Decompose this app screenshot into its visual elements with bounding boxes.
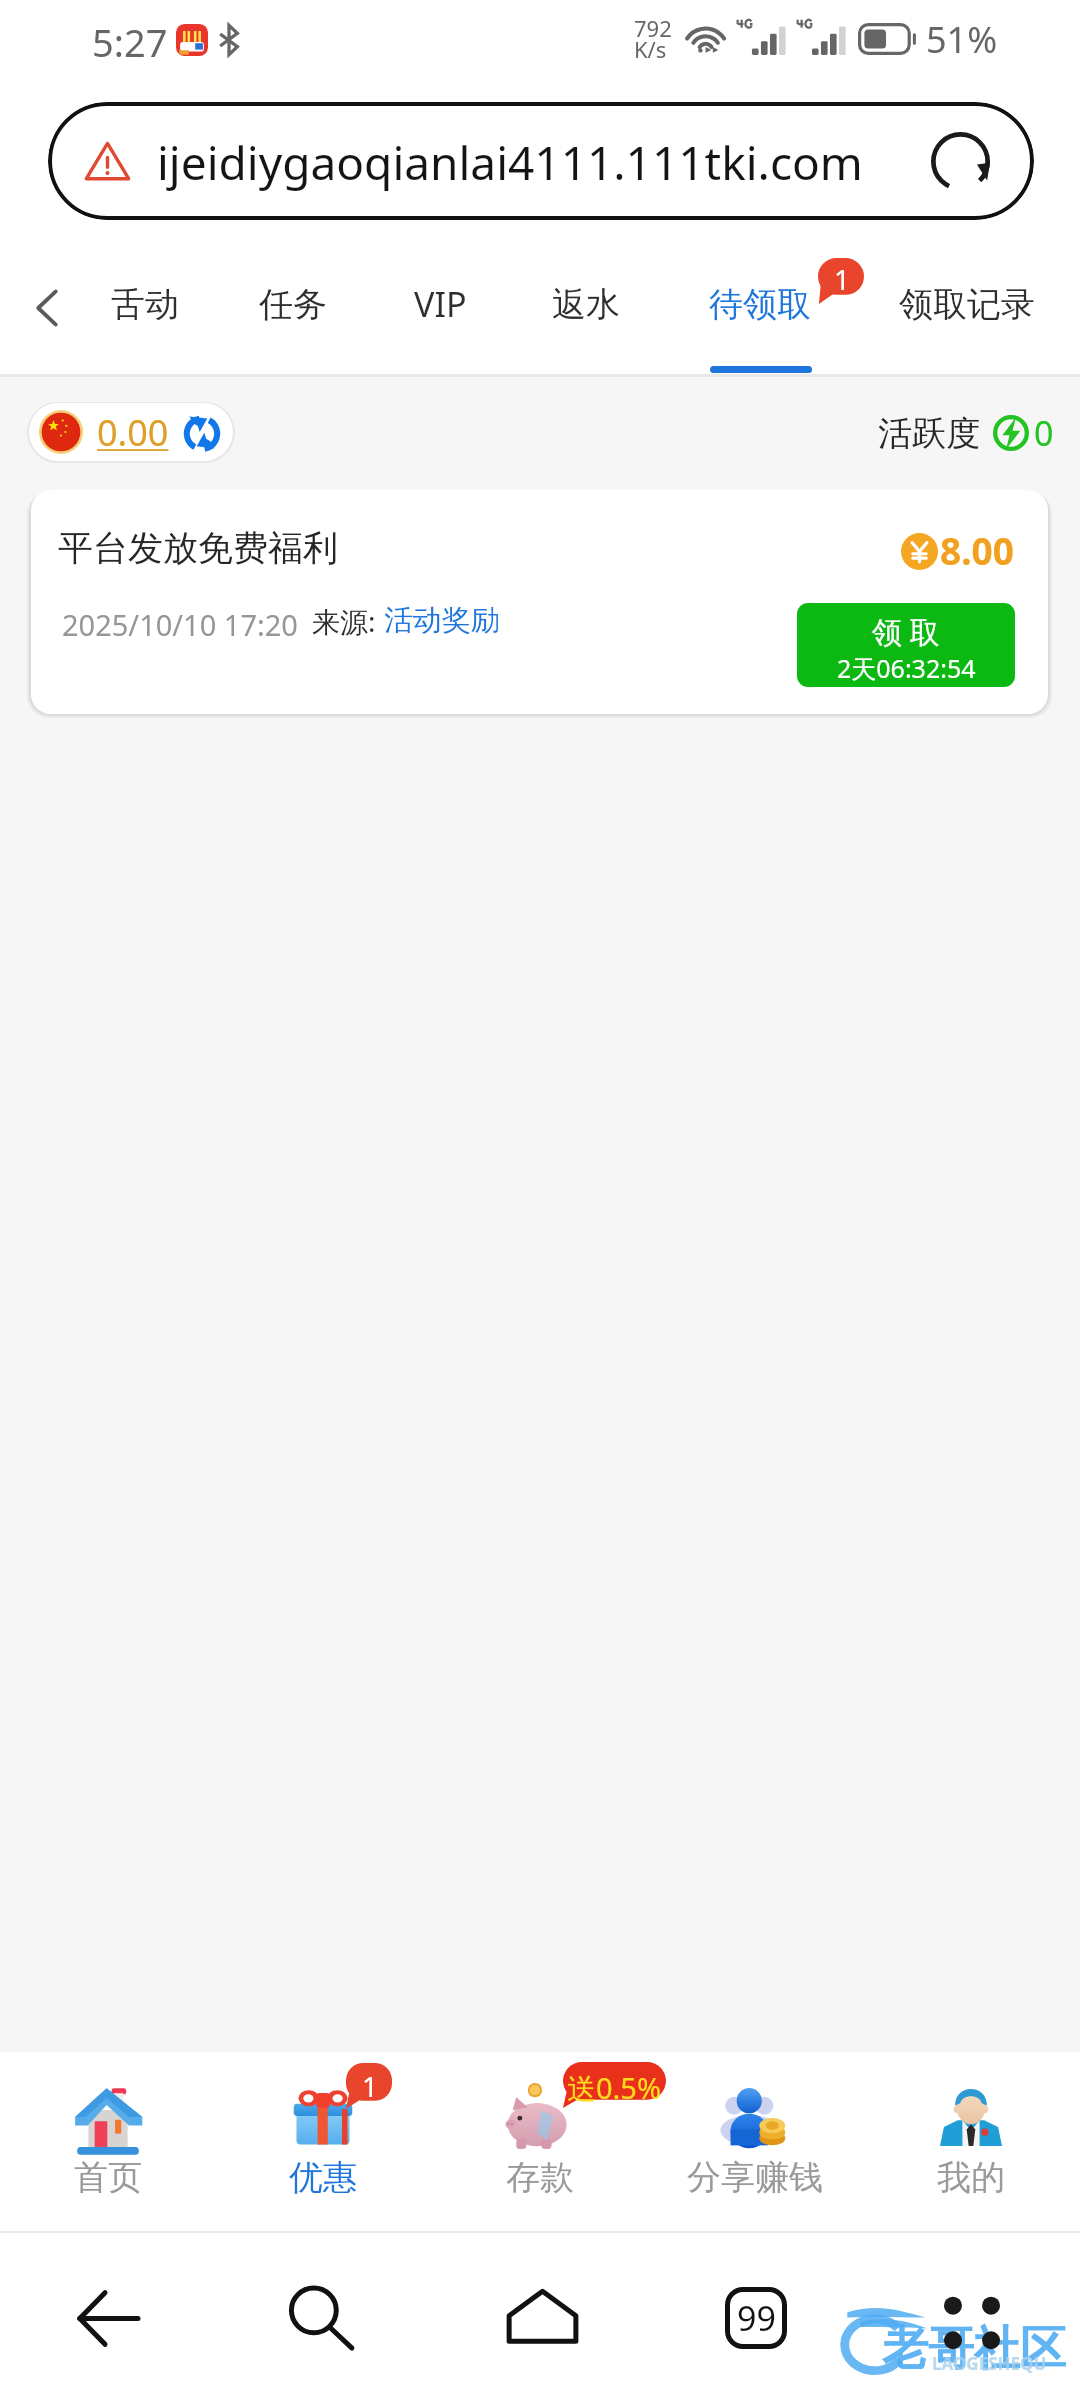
button[interactable]: Back	[3, 252, 91, 364]
button[interactable]: 首页	[0, 2052, 216, 2231]
button[interactable]: 优惠	[215, 2052, 431, 2231]
staticText: 送0.5%	[567, 2068, 662, 2108]
button[interactable]: 0.00	[29, 403, 233, 461]
button[interactable]: Reload	[931, 132, 990, 191]
staticText: 老哥社区	[882, 2320, 1066, 2378]
staticText: ijeidiygaoqianlai4111.111tki.com	[157, 131, 863, 194]
button[interactable]: 待领取	[689, 246, 831, 362]
button[interactable]: 领取记录	[879, 246, 1055, 362]
button[interactable]: 我的	[863, 2052, 1079, 2231]
staticText: 活跃度	[878, 412, 980, 455]
staticText: 首页	[74, 2156, 142, 2199]
staticText: 我的	[937, 2156, 1005, 2199]
staticText: 0.00	[97, 408, 169, 457]
button[interactable]: 返水	[532, 246, 640, 362]
button[interactable]: Back	[48, 2258, 168, 2378]
staticText: 分享赚钱	[687, 2156, 823, 2199]
staticText: 返水	[552, 283, 620, 326]
staticText: 活动奖励	[384, 602, 500, 639]
staticText: VIP	[414, 281, 467, 327]
staticText: 792	[634, 13, 672, 43]
staticText: 平台发放免费福利	[58, 526, 338, 570]
staticText: 领 取	[872, 611, 940, 652]
button[interactable]: ijeidiygaoqianlai4111.111tki.com	[48, 102, 1034, 220]
button[interactable]: 分享赚钱	[647, 2052, 863, 2231]
staticText: 8.00	[940, 525, 1014, 575]
staticText: 领取记录	[899, 283, 1035, 326]
staticText: 51%	[926, 15, 998, 64]
staticText: 待领取	[709, 283, 811, 326]
button[interactable]: 平台发放免费福利	[31, 490, 1048, 714]
button[interactable]: Home	[482, 2258, 602, 2378]
staticText: 2天06:32:54	[837, 651, 976, 685]
button[interactable]: 舌动	[91, 246, 199, 362]
button[interactable]: 活跃度	[878, 404, 1054, 462]
button[interactable]: 领 取	[797, 603, 1015, 687]
staticText: K/s	[634, 34, 667, 64]
staticText: 1	[834, 260, 851, 298]
button[interactable]: Search	[262, 2258, 382, 2378]
staticText: 99	[737, 2295, 776, 2341]
button[interactable]: 存款	[432, 2052, 648, 2231]
staticText: 存款	[506, 2156, 574, 2199]
button[interactable]: Tabs	[696, 2258, 816, 2378]
staticText: 0	[1034, 410, 1054, 456]
staticText: 来源:	[312, 602, 376, 640]
button[interactable]: More	[912, 2262, 1032, 2382]
staticText: 舌动	[111, 283, 179, 326]
staticText: 2025/10/10 17:20	[62, 605, 298, 644]
button[interactable]: VIP	[394, 246, 487, 362]
staticText: 1	[362, 2067, 379, 2105]
staticText: 任务	[259, 283, 327, 326]
staticText: 优惠	[289, 2156, 357, 2199]
staticText: 5:27	[92, 16, 168, 68]
staticText: LAOGESHEQU	[932, 2352, 1047, 2375]
button[interactable]: 任务	[239, 246, 347, 362]
